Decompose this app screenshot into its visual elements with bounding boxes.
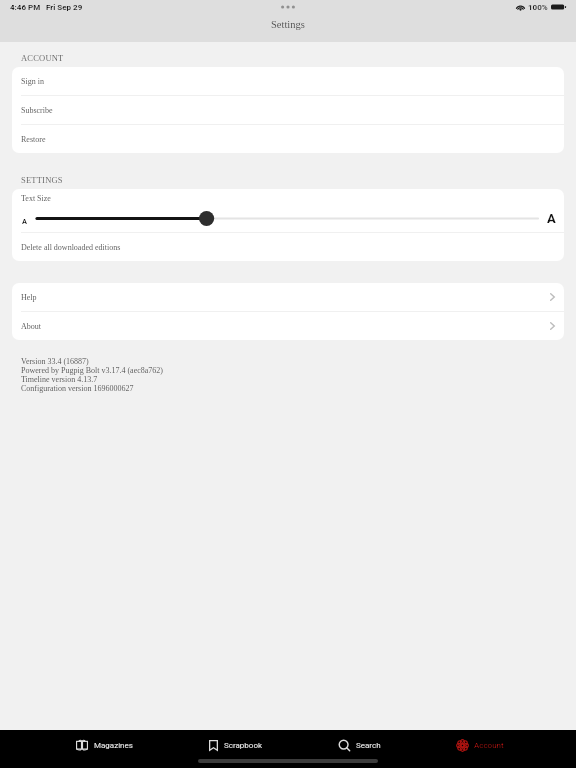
staticText: Magazines — [94, 741, 133, 750]
button[interactable]: Magazines — [46, 734, 163, 756]
staticText: Account — [474, 741, 504, 750]
staticText: Timeline version 4.13.7 — [21, 375, 98, 384]
button[interactable]: Restore — [12, 125, 564, 153]
staticText: Text Size — [21, 194, 51, 203]
staticText: Configuration version 1696000627 — [21, 384, 134, 393]
staticText: Version 33.4 (16887) — [21, 357, 89, 366]
other: Account — [457, 740, 468, 751]
staticText: Sign in — [21, 77, 44, 86]
staticText: Settings — [271, 19, 305, 31]
staticText: Scrapbook — [224, 741, 263, 750]
button[interactable] — [37, 210, 538, 227]
button[interactable]: Search — [309, 734, 411, 756]
button[interactable]: Help — [12, 283, 564, 311]
button[interactable]: Delete all downloaded editions — [12, 233, 564, 261]
staticText: Powered by Pugpig Bolt v3.17.4 (aec8a762… — [21, 366, 163, 375]
staticText: Subscribe — [21, 106, 53, 115]
staticText: Delete all downloaded editions — [21, 243, 121, 252]
staticText: A — [22, 217, 27, 226]
staticText: Help — [21, 293, 37, 302]
staticText: Search — [356, 741, 381, 750]
button[interactable]: Scrapbook — [179, 734, 293, 756]
button[interactable]: About — [12, 312, 564, 340]
staticText: Fri Sep 29 — [46, 3, 83, 12]
button[interactable]: Account — [427, 734, 534, 756]
staticText: 4:46 PM — [10, 3, 41, 12]
button[interactable]: Sign in — [12, 67, 564, 95]
staticText: ACCOUNT — [21, 53, 64, 62]
button[interactable]: Subscribe — [12, 96, 564, 124]
other: Scrapbook — [209, 740, 218, 751]
other: Magazines — [76, 740, 88, 750]
staticText: 100% — [528, 3, 548, 12]
staticText: About — [21, 322, 41, 331]
staticText: Restore — [21, 135, 46, 144]
other: Search — [339, 740, 350, 751]
staticText: SETTINGS — [21, 175, 63, 184]
staticText: A — [547, 211, 556, 226]
